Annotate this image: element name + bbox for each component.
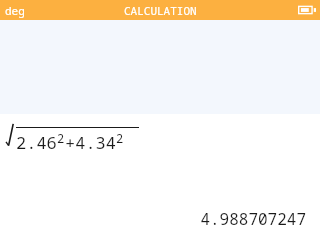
- staticText: CALCULATION: [124, 3, 197, 18]
- staticText: +4.34: [65, 131, 116, 154]
- staticText: 2.46: [16, 131, 57, 154]
- staticText: 2: [57, 130, 65, 146]
- staticText: 2: [116, 130, 124, 146]
- button[interactable]: 2.46: [0, 114, 320, 240]
- button[interactable]: Battery: [298, 4, 316, 16]
- staticText: 4.988707247: [200, 208, 306, 230]
- staticText: deg: [5, 3, 25, 18]
